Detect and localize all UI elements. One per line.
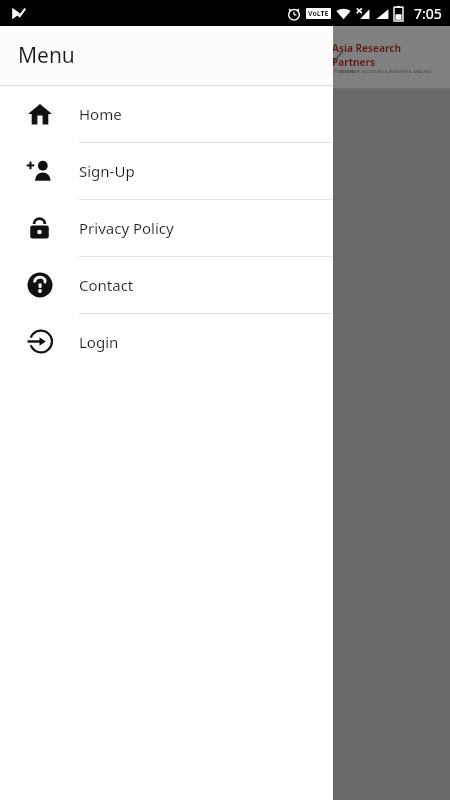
staticText: ACCURATE SOLUTIONS & INSIGHTFUL ANALYSIS [340,69,432,74]
staticText: Home [79,104,122,124]
staticText: VoLTE [308,9,329,19]
staticText: Asia Research Partners [332,41,440,69]
staticText: Partners [334,68,355,75]
staticText: Contact [79,275,134,295]
staticText: 7:05 [414,4,442,23]
staticText: Login [79,332,119,352]
button[interactable]: Home [0,86,333,143]
staticText: Sign-Up [79,161,135,181]
button[interactable]: Sign-Up [0,143,333,200]
button[interactable]: Contact [0,257,333,314]
staticText: Privacy Policy [79,218,174,238]
staticText: Menu [18,41,75,70]
button[interactable]: Privacy Policy [0,200,333,257]
button[interactable]: Login [0,314,333,370]
